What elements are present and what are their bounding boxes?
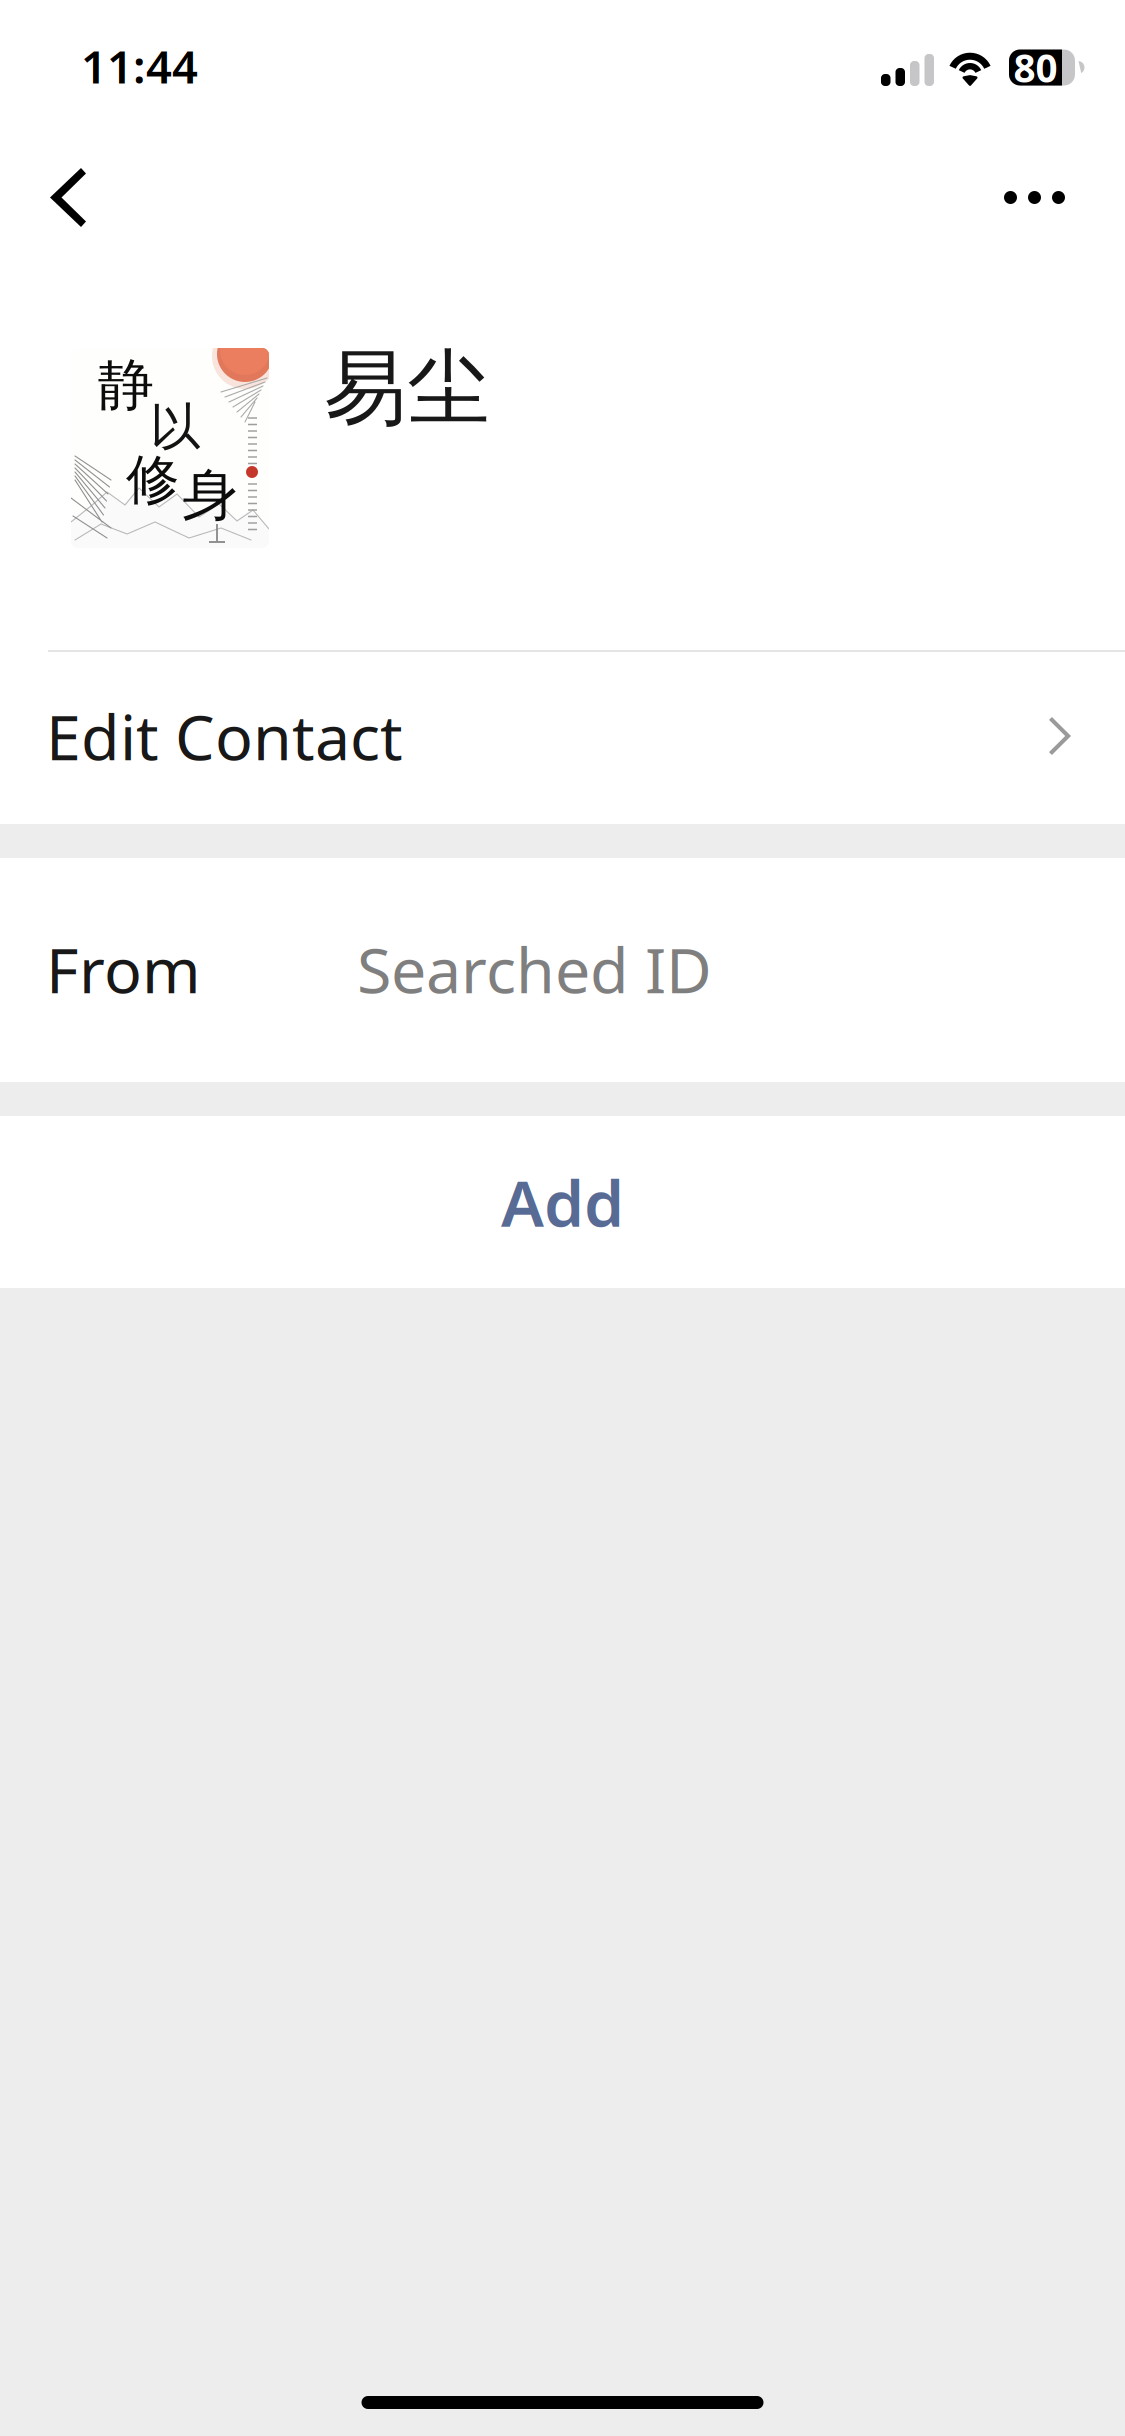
button[interactable]: More options [964, 134, 1125, 253]
staticText: 易尘 [324, 338, 490, 439]
staticText: 11:44 [81, 36, 198, 96]
staticText: From [46, 927, 201, 1011]
button[interactable]: Add [0, 1116, 1125, 1288]
staticText: Add [501, 1159, 624, 1244]
staticText: 修 [126, 447, 179, 512]
staticText: Edit Contact [46, 694, 403, 778]
staticText: Searched ID [357, 927, 712, 1011]
button[interactable]: Edit Contact [0, 652, 1125, 824]
button[interactable]: Back [0, 134, 130, 253]
staticText: 以 [150, 396, 201, 458]
staticText: 身 [182, 461, 238, 530]
staticText: 80 [1013, 42, 1057, 93]
staticText: 静 [98, 351, 154, 420]
